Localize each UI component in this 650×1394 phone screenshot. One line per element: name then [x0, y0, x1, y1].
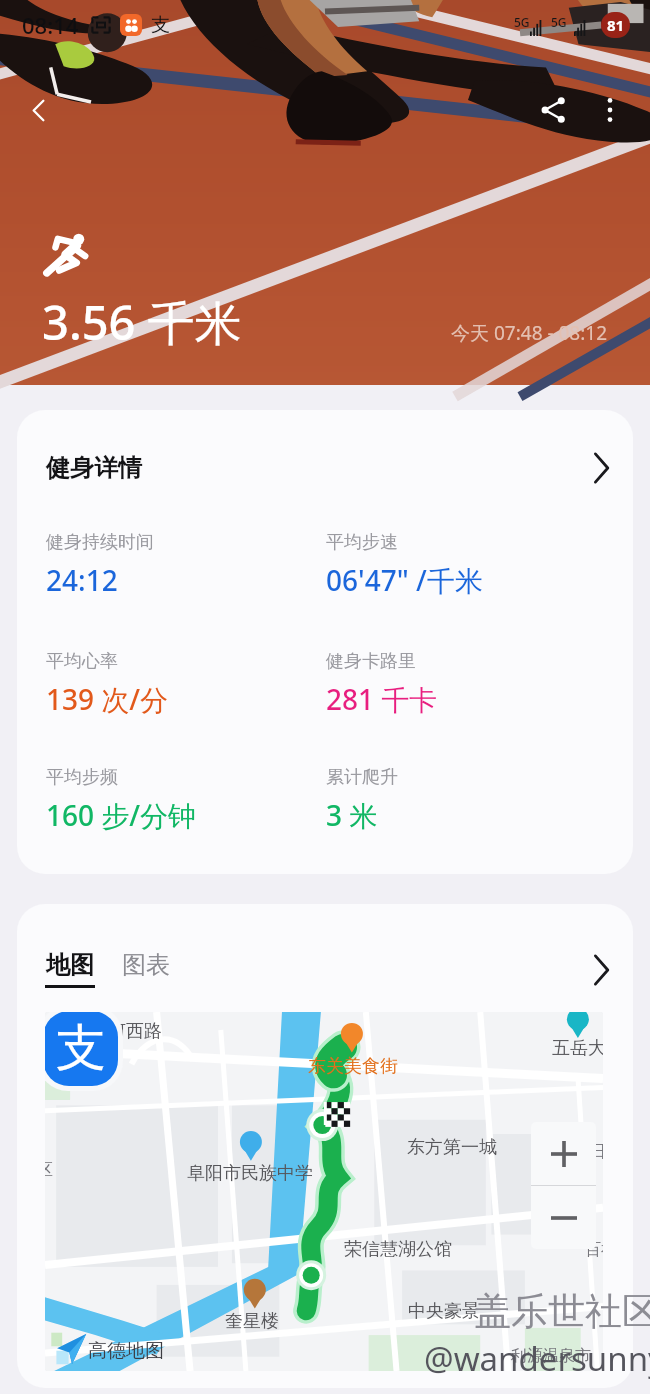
- button[interactable]: Back: [12, 84, 64, 136]
- staticText: 281 千卡: [326, 680, 438, 718]
- staticText: 阜阳市民族中学: [187, 1162, 313, 1185]
- staticText: 荣信慧湖公馆: [344, 1238, 452, 1261]
- staticText: 平均步频: [46, 766, 118, 789]
- staticText: 3 米: [326, 796, 378, 834]
- button[interactable]: 图表: [122, 950, 170, 988]
- staticText: 图表: [122, 950, 170, 980]
- staticText: 奎星楼: [225, 1310, 279, 1333]
- staticText: @wandersunny: [424, 1336, 650, 1381]
- button[interactable]: 地图: [45, 950, 95, 988]
- staticText: 支: [151, 13, 170, 37]
- staticText: 健身卡路里: [326, 650, 416, 673]
- staticText: 累计爬升: [326, 766, 398, 789]
- staticText: 利源温泉市: [511, 1346, 591, 1366]
- staticText: 高德地图: [88, 1339, 164, 1363]
- staticText: 支: [56, 1017, 106, 1080]
- staticText: 06'47" /千米: [326, 561, 483, 599]
- staticText: 东方第一城: [407, 1136, 497, 1159]
- button[interactable]: More options: [584, 84, 636, 136]
- staticText: 平均步速: [326, 531, 398, 554]
- staticText: 5G: [514, 14, 530, 30]
- staticText: 五岳大: [552, 1037, 603, 1060]
- staticText: 139 次/分: [46, 680, 169, 718]
- staticText: 盖乐世社区: [474, 1288, 650, 1335]
- staticText: 地图: [46, 950, 94, 980]
- button[interactable]: Zoom out: [531, 1186, 596, 1249]
- staticText: 区: [45, 1160, 53, 1180]
- staticText: 08:14: [22, 10, 79, 40]
- staticText: 今天 07:48 - 08:12: [451, 320, 608, 346]
- button[interactable]: Share: [528, 84, 580, 136]
- staticText: 日: [590, 1142, 603, 1162]
- staticText: 平均心率: [46, 650, 118, 673]
- button[interactable]: Zoom in: [531, 1122, 596, 1185]
- staticText: 百祥: [585, 1240, 603, 1260]
- staticText: 东关美食街: [308, 1055, 398, 1078]
- staticText: 河西路: [108, 1020, 162, 1043]
- staticText: 健身持续时间: [46, 531, 154, 554]
- button[interactable]: 健身详情: [17, 410, 633, 874]
- staticText: 160 步/分钟: [46, 796, 197, 834]
- staticText: 3.56 千米: [42, 290, 242, 354]
- staticText: 24:12: [46, 561, 118, 599]
- staticText: 5G: [551, 14, 567, 30]
- staticText: 81: [607, 15, 625, 35]
- staticText: 健身详情: [46, 453, 142, 483]
- staticText: 中央豪景: [408, 1300, 480, 1323]
